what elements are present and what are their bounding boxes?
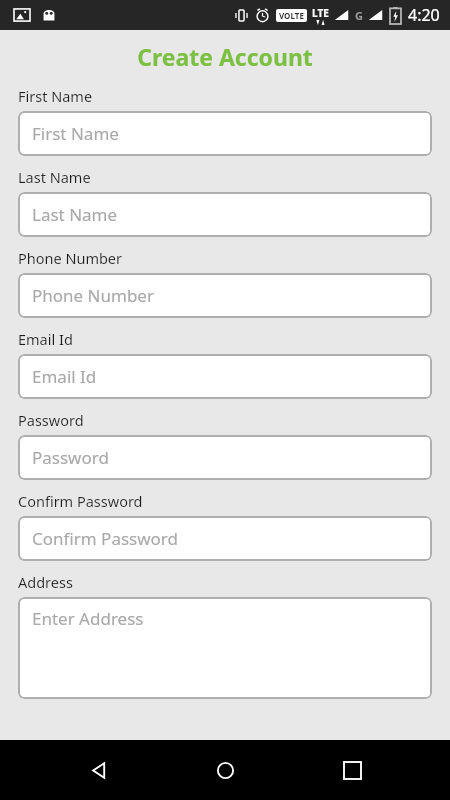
- button[interactable]: Password: [18, 435, 432, 480]
- staticText: Email Id: [32, 365, 97, 388]
- staticText: Enter Address: [32, 607, 144, 630]
- staticText: Phone Number: [32, 284, 154, 307]
- button[interactable]: Home: [196, 741, 254, 799]
- staticText: VOLTE: [279, 10, 304, 21]
- button[interactable]: Phone Number: [18, 273, 432, 318]
- staticText: Confirm Password: [18, 491, 143, 511]
- staticText: LTE: [312, 6, 329, 20]
- staticText: Create Account: [0, 41, 450, 72]
- staticText: G: [355, 8, 363, 23]
- button[interactable]: Enter Address: [18, 597, 432, 699]
- staticText: Password: [18, 410, 84, 430]
- staticText: First Name: [18, 86, 93, 106]
- staticText: Confirm Password: [32, 527, 178, 550]
- staticText: First Name: [32, 122, 119, 145]
- button[interactable]: Last Name: [18, 192, 432, 237]
- staticText: Password: [32, 446, 109, 469]
- button[interactable]: First Name: [18, 111, 432, 156]
- staticText: Email Id: [18, 329, 73, 349]
- staticText: Address: [18, 572, 73, 592]
- staticText: 4:20: [408, 4, 440, 26]
- button[interactable]: Email Id: [18, 354, 432, 399]
- button[interactable]: Back: [69, 741, 127, 799]
- button[interactable]: Recent apps: [323, 741, 381, 799]
- staticText: Phone Number: [18, 248, 123, 268]
- staticText: Last Name: [32, 203, 118, 226]
- staticText: Last Name: [18, 167, 91, 187]
- button[interactable]: Confirm Password: [18, 516, 432, 561]
